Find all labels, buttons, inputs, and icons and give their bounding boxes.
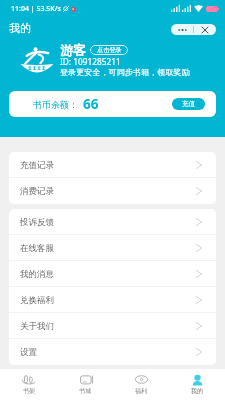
button[interactable]: Close bbox=[194, 24, 216, 35]
button[interactable]: 我的 bbox=[169, 369, 225, 400]
button[interactable]: 充值 bbox=[172, 98, 205, 110]
button[interactable]: 在线客服 bbox=[9, 235, 216, 261]
button[interactable]: 消费记录 bbox=[9, 178, 216, 204]
staticText: 我的 bbox=[191, 387, 203, 395]
staticText: 书架 bbox=[23, 387, 35, 395]
staticText: 66 bbox=[83, 95, 99, 113]
staticText: 书币余额： bbox=[33, 99, 78, 110]
button[interactable]: 书架 bbox=[0, 369, 57, 400]
staticText: ID: 1091285211 bbox=[60, 56, 121, 67]
staticText: 11:04 | 53.5K/s bbox=[11, 4, 61, 14]
button[interactable]: Avatar bbox=[20, 45, 54, 72]
button[interactable]: 福利 bbox=[113, 369, 169, 400]
staticText: 投诉反馈 bbox=[20, 217, 54, 228]
staticText: 关于我们 bbox=[20, 321, 54, 332]
button[interactable]: 设置 bbox=[9, 339, 216, 365]
button[interactable]: 投诉反馈 bbox=[9, 209, 216, 235]
button[interactable]: 点击登录 bbox=[90, 45, 128, 55]
staticText: 消费记录 bbox=[20, 186, 54, 197]
staticText: 兑换福利 bbox=[20, 295, 54, 306]
staticText: 充值记录 bbox=[20, 160, 54, 171]
staticText: 福利 bbox=[135, 387, 147, 395]
staticText: 充值 bbox=[182, 100, 195, 108]
button[interactable]: 兑换福利 bbox=[9, 287, 216, 313]
button[interactable]: 我的消息 bbox=[9, 261, 216, 287]
staticText: 书城 bbox=[79, 387, 91, 395]
button[interactable]: 关于我们 bbox=[9, 313, 216, 339]
button[interactable]: 充值记录 bbox=[9, 152, 216, 178]
staticText: 游客 bbox=[60, 42, 86, 58]
staticText: 我的消息 bbox=[20, 269, 54, 280]
staticText: 点击登录 bbox=[97, 46, 122, 54]
staticText: 我的 bbox=[9, 21, 31, 35]
button[interactable]: 书城 bbox=[57, 369, 113, 400]
staticText: 设置 bbox=[20, 347, 37, 358]
staticText: 登录更安全，可同步书籍，领取奖励 bbox=[60, 67, 190, 77]
staticText: 在线客服 bbox=[20, 243, 54, 254]
button[interactable]: More options bbox=[171, 24, 193, 35]
